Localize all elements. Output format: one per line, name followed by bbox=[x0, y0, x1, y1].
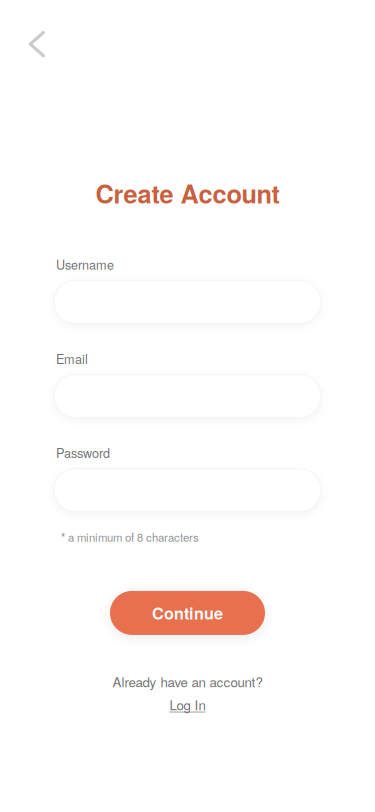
staticText: Log In bbox=[169, 695, 205, 714]
staticText: Create Account bbox=[95, 175, 279, 211]
staticText: Continue bbox=[152, 601, 223, 625]
button[interactable]: Back bbox=[15, 22, 59, 66]
button[interactable]: Log In bbox=[169, 695, 205, 714]
staticText: Password bbox=[56, 444, 110, 462]
button[interactable]: Continue bbox=[110, 591, 265, 635]
staticText: * a minimum of 8 characters bbox=[61, 529, 199, 545]
staticText: Already have an account? bbox=[112, 672, 262, 691]
staticText: Email bbox=[56, 349, 88, 367]
staticText: Username bbox=[56, 255, 114, 273]
